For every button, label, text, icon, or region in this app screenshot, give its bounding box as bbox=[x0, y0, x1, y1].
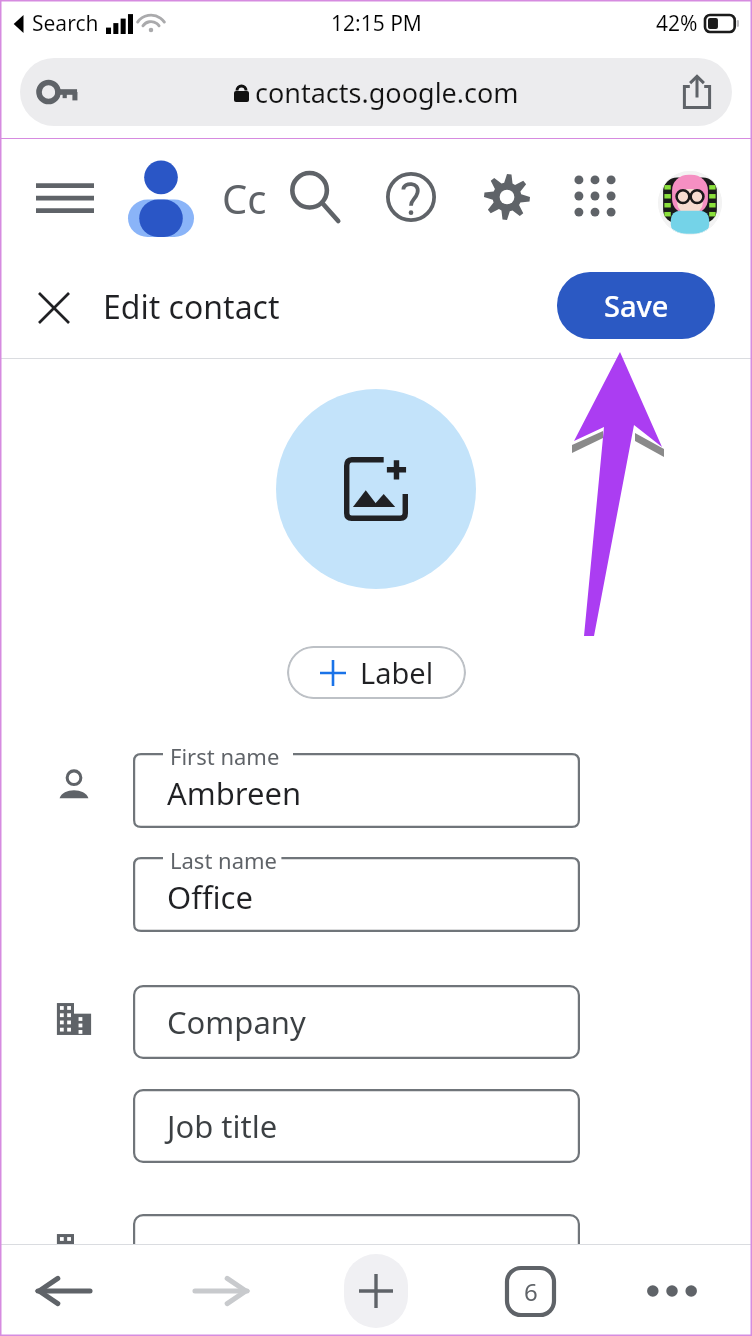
button[interactable]: More options bbox=[640, 1273, 704, 1309]
staticText: contacts.google.com bbox=[255, 74, 519, 111]
staticText: Edit contact bbox=[103, 285, 280, 329]
button[interactable]: Company bbox=[133, 985, 580, 1059]
button[interactable]: Tabs: 6 open bbox=[505, 1266, 556, 1317]
staticText: 6 bbox=[524, 1275, 538, 1308]
staticText: Search bbox=[32, 9, 99, 38]
staticText: Save bbox=[604, 286, 669, 325]
staticText: 42% bbox=[656, 9, 698, 38]
button[interactable]: Back bbox=[33, 1270, 95, 1312]
staticText: Company bbox=[167, 1001, 306, 1043]
button[interactable]: Label bbox=[287, 646, 466, 699]
button[interactable]: Google Contacts bbox=[128, 159, 194, 237]
button[interactable]: Add photo bbox=[276, 389, 476, 589]
staticText: Label bbox=[360, 653, 434, 692]
button[interactable]: Save bbox=[557, 272, 715, 339]
button[interactable]: Google apps bbox=[572, 173, 618, 219]
button[interactable]: Help bbox=[386, 170, 436, 224]
staticText: Last name bbox=[170, 845, 277, 875]
staticText: First name bbox=[170, 741, 280, 771]
staticText: Ambreen bbox=[167, 772, 302, 814]
staticText: 12:15 PM bbox=[331, 9, 422, 38]
button[interactable]: Close bbox=[28, 282, 80, 334]
staticText: Job title bbox=[167, 1105, 278, 1147]
button[interactable]: New tab bbox=[344, 1254, 408, 1328]
staticText: Cc bbox=[222, 171, 267, 225]
button[interactable]: Main menu bbox=[36, 173, 94, 223]
button[interactable]: Settings bbox=[482, 170, 532, 224]
staticText: Office bbox=[167, 876, 253, 918]
button[interactable]: Last name bbox=[133, 857, 580, 932]
button[interactable]: Cc bbox=[213, 169, 275, 227]
other: Reader view bbox=[38, 78, 78, 106]
button[interactable]: First name bbox=[133, 753, 580, 828]
button[interactable]: Job title bbox=[133, 1089, 580, 1163]
button[interactable]: Google Account bbox=[658, 171, 722, 235]
button[interactable]: Reader view bbox=[20, 58, 732, 126]
button[interactable]: Search bbox=[288, 169, 342, 225]
button[interactable]: Forward bbox=[190, 1270, 252, 1312]
other: Share bbox=[682, 75, 712, 109]
